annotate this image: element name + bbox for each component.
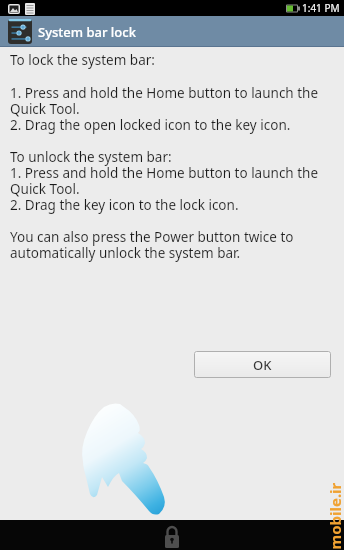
- button[interactable]: OK: [194, 351, 331, 378]
- staticText: System bar lock: [38, 23, 136, 41]
- staticText: 1:41 PM: [302, 1, 340, 15]
- button[interactable]: [161, 525, 183, 549]
- staticText: OK: [253, 356, 272, 374]
- staticText: mobile.ir: [324, 482, 344, 549]
- button[interactable]: System bar lock: [0, 16, 344, 47]
- staticText: To lock the system bar: 1. Press and hol…: [10, 51, 319, 262]
